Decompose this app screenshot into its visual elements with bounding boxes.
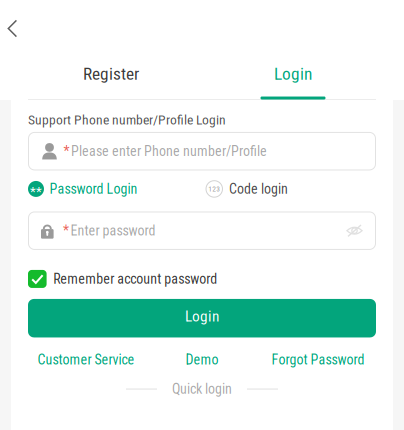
staticText: Register (83, 64, 139, 84)
staticText: Quick login (172, 381, 232, 397)
staticText: Forgot Password (271, 351, 364, 368)
staticText: Password Login (49, 181, 137, 197)
staticText: Please enter Phone number/Profile (71, 143, 267, 159)
staticText: Remember account password (53, 271, 217, 287)
staticText: Customer Service (37, 351, 134, 368)
button[interactable]: Remember account password (28, 270, 376, 288)
staticText: 123 (208, 185, 220, 193)
button[interactable]: 123 (206, 181, 288, 197)
staticText: * (63, 143, 69, 159)
staticText: * (63, 222, 69, 239)
button[interactable]: Login (28, 299, 376, 337)
button[interactable]: Login (202, 51, 384, 100)
staticText: Login (274, 64, 312, 84)
button[interactable]: Demo (144, 351, 260, 368)
button[interactable]: Customer Service (28, 351, 144, 368)
staticText: Login (185, 307, 219, 325)
staticText: Demo (185, 351, 218, 368)
button[interactable]: Forgot Password (260, 351, 376, 368)
staticText: ** (30, 184, 42, 199)
button[interactable]: ** (28, 181, 137, 197)
button[interactable]: Show password (346, 223, 363, 238)
staticText: Code login (229, 181, 288, 197)
staticText: Enter password (71, 222, 156, 239)
staticText: Support Phone number/Profile Login (28, 112, 226, 128)
button[interactable]: Back (0, 0, 25, 50)
button[interactable]: Register (20, 51, 202, 100)
